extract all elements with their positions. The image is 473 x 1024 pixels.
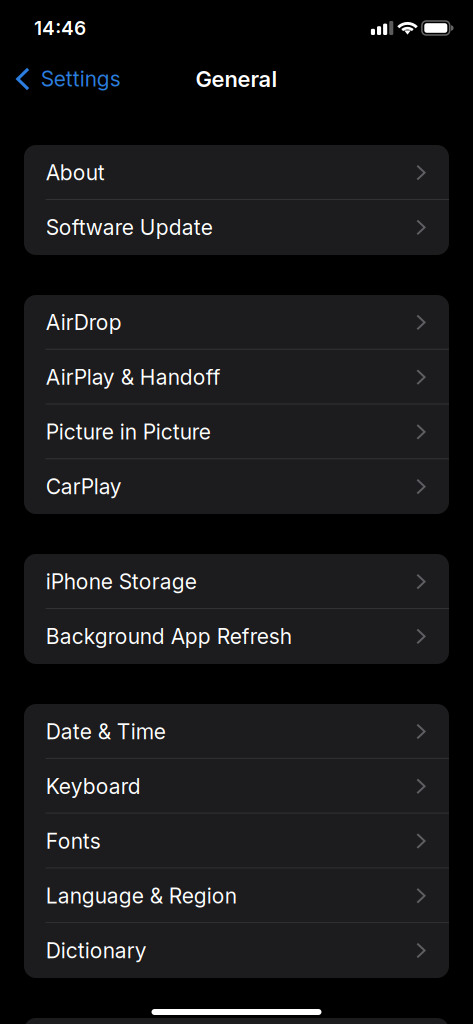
button[interactable]: VPN & Device Management [24,1018,449,1024]
button[interactable]: Software Update [24,200,449,255]
staticText: CarPlay [46,474,122,499]
button[interactable]: Settings [0,56,131,102]
button[interactable]: Date & Time [24,704,449,759]
staticText: Language & Region [46,883,237,908]
staticText: Keyboard [46,773,141,799]
staticText: About [46,160,105,185]
button[interactable]: iPhone Storage [24,554,449,609]
staticText: Picture in Picture [46,419,211,445]
staticText: Settings [41,66,121,92]
staticText: iPhone Storage [46,569,197,594]
staticText: General [195,66,277,92]
button[interactable]: Background App Refresh [24,609,449,664]
button[interactable]: CarPlay [24,459,449,514]
button[interactable]: About [24,145,449,200]
button[interactable]: AirPlay & Handoff [24,350,449,405]
button[interactable]: Picture in Picture [24,404,449,459]
button[interactable]: Language & Region [24,868,449,923]
staticText: Date & Time [46,719,166,744]
button[interactable]: Dictionary [24,923,449,978]
button[interactable]: Keyboard [24,759,449,814]
staticText: Fonts [46,828,101,854]
staticText: AirPlay & Handoff [46,364,221,390]
staticText: Background App Refresh [46,624,292,649]
staticText: 14:46 [34,16,86,40]
staticText: AirDrop [46,310,122,335]
button[interactable]: Fonts [24,814,449,868]
button[interactable]: AirDrop [24,295,449,350]
staticText: Software Update [46,215,213,240]
staticText: Dictionary [46,938,147,963]
